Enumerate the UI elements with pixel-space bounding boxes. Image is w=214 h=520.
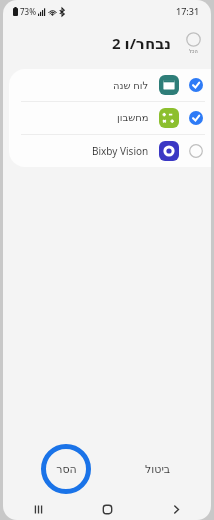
staticText: מחשבון: [117, 112, 149, 124]
staticText: הכל: [189, 48, 198, 54]
staticText: הסר: [56, 463, 77, 476]
staticText: לוח שנה: [113, 78, 149, 92]
button[interactable]: הסר: [41, 444, 91, 494]
button[interactable]: ביטול: [135, 457, 181, 482]
button[interactable]: Home: [73, 498, 142, 520]
button[interactable]: Back: [142, 498, 211, 520]
staticText: 17:31: [176, 5, 200, 17]
button[interactable]: Bixby Vision: [9, 135, 211, 167]
staticText: Bixby Vision: [92, 144, 149, 158]
staticText: ביטול: [145, 463, 171, 476]
staticText: 73%: [20, 6, 36, 17]
button[interactable]: מחשבון: [9, 102, 211, 134]
button[interactable]: Recents: [3, 498, 73, 520]
button[interactable]: לוח שנה: [9, 69, 211, 101]
button[interactable]: Select all: [184, 30, 203, 56]
staticText: 2 נבחר/ו: [112, 33, 172, 53]
